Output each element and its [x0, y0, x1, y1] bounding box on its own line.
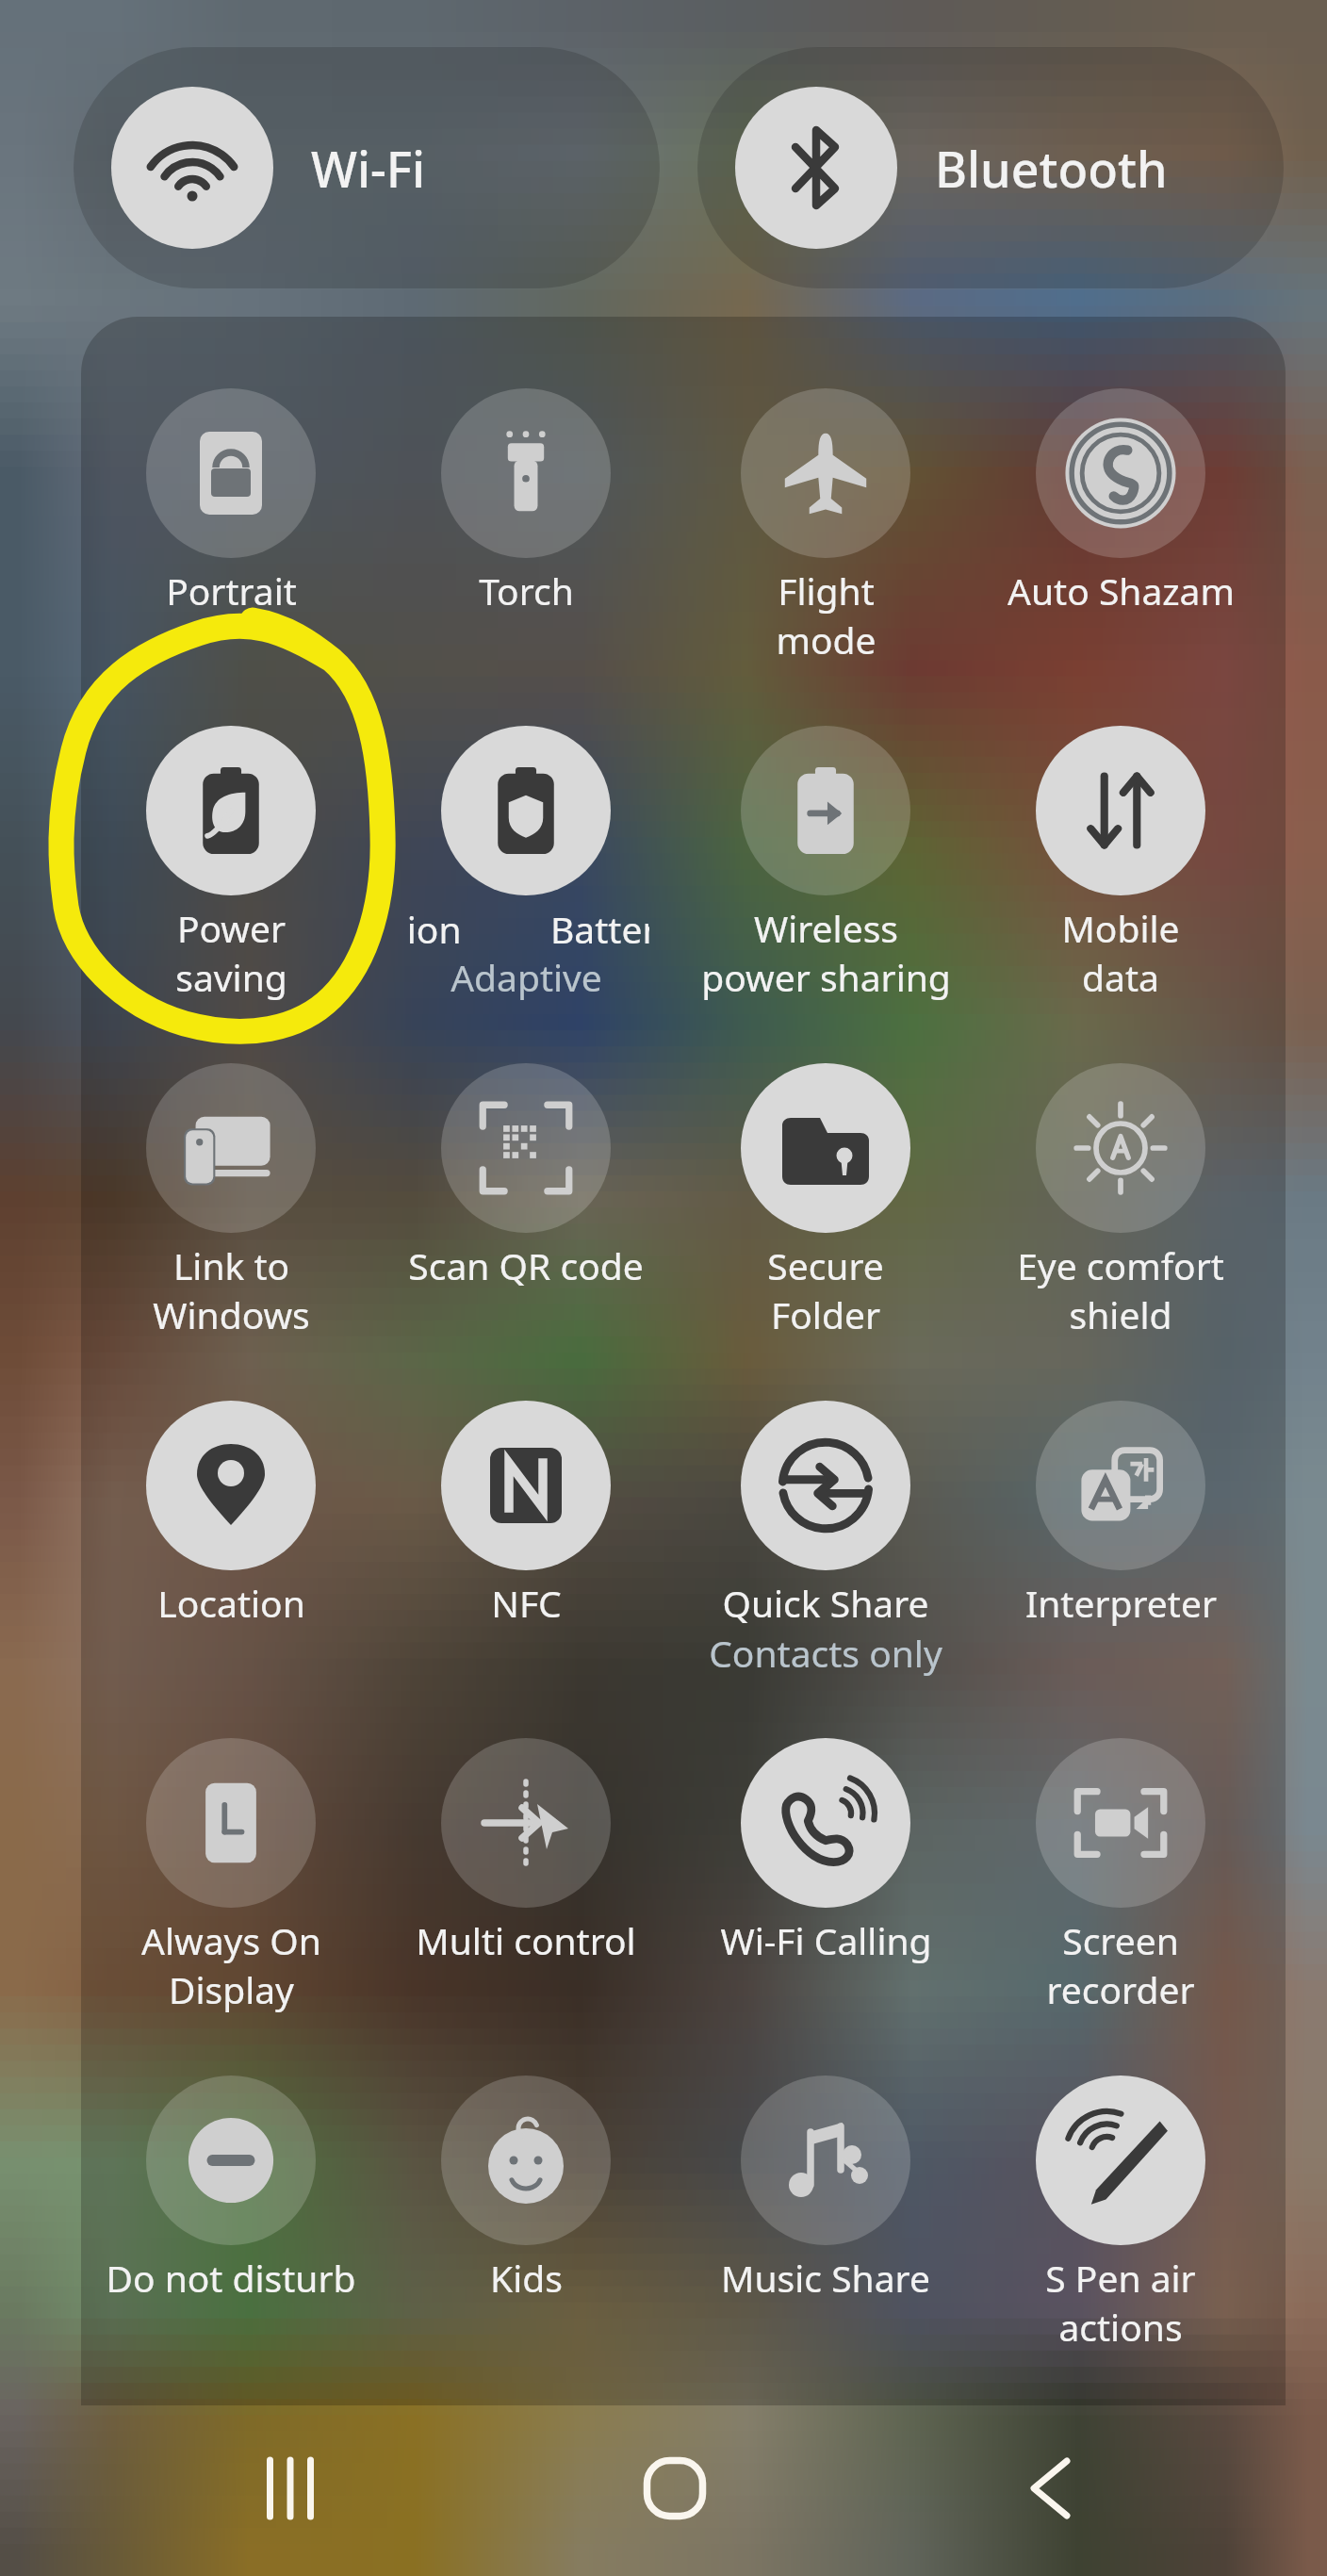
button[interactable]: S Pen air actions — [973, 2053, 1269, 2354]
staticText: Scan QR code — [408, 1240, 644, 1290]
button[interactable]: NFC — [378, 1378, 674, 1680]
staticText: Auto Shazam — [1008, 566, 1235, 615]
button[interactable]: Torch — [378, 366, 674, 667]
button[interactable]: Quick Share — [678, 1378, 974, 1680]
staticText: Interpreter — [1025, 1578, 1217, 1628]
button[interactable]: Power saving — [83, 703, 379, 1005]
staticText: Contacts only — [709, 1628, 942, 1678]
staticText: Kids — [490, 2253, 563, 2303]
button[interactable]: Multi control — [378, 1715, 674, 2017]
staticText: Mobile data — [1061, 903, 1180, 1002]
staticText: Multi control — [416, 1915, 636, 1965]
staticText: Wireless power sharing — [701, 903, 951, 1002]
button[interactable]: Bluetooth — [697, 47, 1284, 288]
button[interactable]: Portrait — [83, 366, 379, 667]
button[interactable]: Kids — [378, 2053, 674, 2354]
button[interactable]: Secure Folder — [678, 1041, 974, 1342]
staticText: Link to Windows — [153, 1240, 310, 1339]
button[interactable]: Recent apps — [239, 2441, 352, 2535]
staticText: protection — [406, 906, 462, 954]
staticText: Power saving — [175, 903, 287, 1002]
button[interactable]: Location — [83, 1378, 379, 1680]
button[interactable]: Scan QR code — [378, 1041, 674, 1342]
staticText: Always On Display — [141, 1915, 321, 2014]
staticText: Quick Share — [722, 1578, 929, 1628]
staticText: Wi-Fi Calling — [720, 1915, 932, 1965]
staticText: NFC — [491, 1578, 562, 1628]
staticText: Battery — [550, 906, 649, 954]
staticText: S Pen air actions — [1045, 2253, 1196, 2352]
staticText: Secure Folder — [767, 1240, 884, 1339]
button[interactable]: Home — [618, 2441, 731, 2535]
staticText: Screen recorder — [1046, 1915, 1195, 2014]
button[interactable]: Always On Display — [83, 1715, 379, 2017]
button[interactable]: Wi-Fi Calling — [678, 1715, 974, 2017]
staticText: Bluetooth — [935, 135, 1168, 202]
button[interactable]: Flight mode — [678, 366, 974, 667]
button[interactable]: Back — [997, 2441, 1110, 2535]
staticText: Location — [157, 1578, 305, 1628]
staticText: Flight mode — [776, 566, 876, 665]
staticText: Adaptive — [451, 952, 602, 1002]
staticText: Eye comfort shield — [1017, 1240, 1224, 1339]
staticText: Music Share — [721, 2253, 930, 2303]
button[interactable]: Link to Windows — [83, 1041, 379, 1342]
button[interactable]: Wireless power sharing — [678, 703, 974, 1005]
button[interactable]: Adaptive — [378, 703, 674, 1005]
staticText: Torch — [479, 566, 574, 615]
button[interactable]: Auto Shazam — [973, 366, 1269, 667]
button[interactable]: Music Share — [678, 2053, 974, 2354]
button[interactable]: Wi-Fi — [74, 47, 660, 288]
staticText: Portrait — [166, 566, 297, 615]
staticText: Do not disturb — [106, 2253, 356, 2303]
button[interactable]: Do not disturb — [83, 2053, 379, 2354]
button[interactable]: Mobile data — [973, 703, 1269, 1005]
button[interactable]: Screen recorder — [973, 1715, 1269, 2017]
button[interactable]: Eye comfort shield — [973, 1041, 1269, 1342]
staticText: Wi-Fi — [311, 135, 426, 202]
button[interactable]: Interpreter — [973, 1378, 1269, 1680]
